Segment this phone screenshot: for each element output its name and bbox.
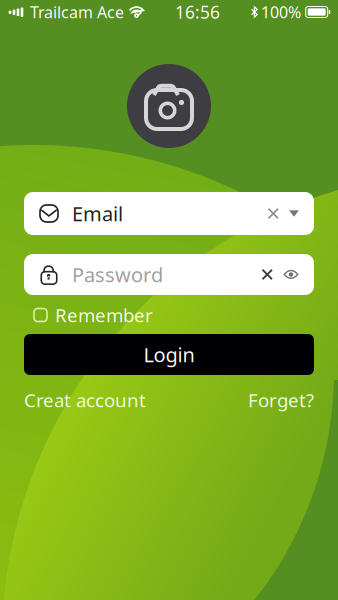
- staticText: Remember: [55, 303, 153, 327]
- staticText: Login: [143, 341, 194, 368]
- staticText: 100%: [261, 1, 301, 23]
- button[interactable]: Creat account: [24, 388, 146, 412]
- staticText: Email: [72, 200, 123, 227]
- button[interactable]: Login: [24, 334, 314, 375]
- staticText: Password: [72, 261, 163, 288]
- button[interactable]: Remember: [0, 306, 338, 324]
- staticText: 16:56: [175, 0, 220, 23]
- button[interactable]: Forget?: [248, 388, 314, 412]
- staticText: Creat account: [24, 388, 146, 412]
- staticText: Trailcam Ace: [30, 1, 124, 23]
- staticText: Forget?: [248, 388, 314, 412]
